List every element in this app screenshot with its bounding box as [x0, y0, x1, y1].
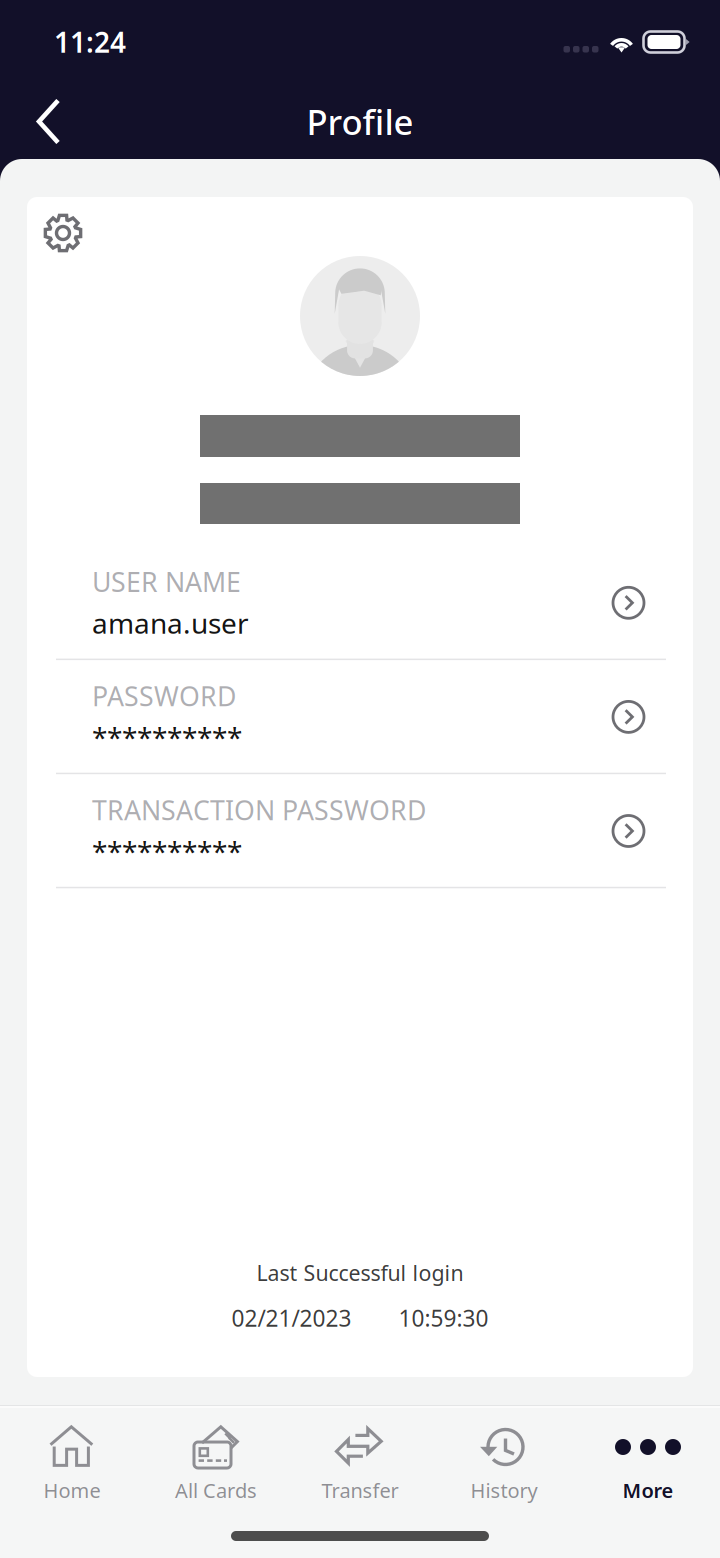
button[interactable]: Transfer	[288, 1408, 432, 1512]
button[interactable]: USER NAME	[27, 546, 693, 660]
staticText: amana.user	[92, 604, 249, 642]
staticText: 10:59:30	[398, 1303, 488, 1333]
staticText: History	[470, 1477, 537, 1504]
staticText: All Cards	[175, 1477, 257, 1504]
staticText: **********	[92, 833, 242, 870]
button[interactable]: Home	[0, 1408, 144, 1512]
button[interactable]: History	[432, 1408, 576, 1512]
button[interactable]: PASSWORD	[27, 660, 693, 774]
staticText: USER NAME	[92, 564, 241, 599]
staticText: TRANSACTION PASSWORD	[92, 792, 426, 828]
button[interactable]: TRANSACTION PASSWORD	[27, 774, 693, 888]
staticText: More	[622, 1477, 673, 1504]
button[interactable]: All Cards	[144, 1408, 288, 1512]
button[interactable]: Settings	[44, 214, 82, 252]
button[interactable]: More	[576, 1408, 720, 1512]
staticText: Profile	[306, 98, 413, 144]
button[interactable]: Back	[10, 85, 87, 157]
staticText: 11:24	[54, 23, 126, 61]
staticText: PASSWORD	[92, 678, 236, 713]
staticText: Last Successful login	[256, 1259, 463, 1287]
staticText: Home	[43, 1477, 100, 1504]
staticText: **********	[92, 718, 242, 756]
staticText: 02/21/2023	[231, 1303, 351, 1333]
staticText: Transfer	[321, 1477, 398, 1504]
